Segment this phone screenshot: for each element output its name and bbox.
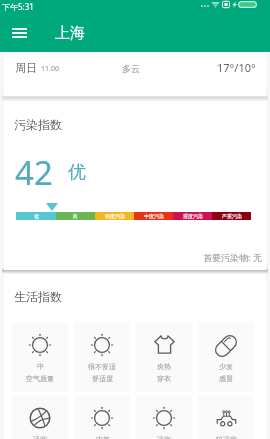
staticText: 舒适度 (92, 374, 113, 383)
staticText: 适宜 (33, 435, 47, 439)
staticText: 中等 (96, 435, 110, 439)
button[interactable]: 周日 (4, 53, 266, 96)
staticText: 17°/10° (217, 60, 256, 75)
button[interactable]: 适宜 (136, 396, 192, 439)
staticText: 生活指数 (14, 289, 62, 304)
staticText: 轻度污染 (105, 213, 125, 219)
button[interactable]: 中等 (74, 396, 130, 439)
button[interactable]: 很不舒适 (74, 323, 130, 392)
staticText: 适宜 (157, 435, 171, 439)
staticText: 严重污染 (222, 213, 242, 219)
staticText: 少发 (219, 362, 233, 371)
staticText: 空气质量 (26, 374, 54, 383)
staticText: 周日 (15, 61, 37, 75)
button[interactable]: 炎热 (136, 323, 192, 392)
button[interactable]: Menu (0, 14, 39, 52)
staticText: 中度污染 (144, 213, 164, 219)
button[interactable]: 少发 (198, 323, 254, 392)
staticText: 较适宜 (216, 435, 237, 439)
button[interactable]: 较适宜 (198, 396, 254, 439)
staticText: 首要污染物: 无 (203, 251, 262, 263)
staticText: 炎热 (157, 362, 171, 371)
button[interactable]: 适宜 (12, 396, 68, 439)
staticText: 穿衣 (157, 374, 171, 383)
staticText: 优 (34, 213, 39, 219)
staticText: 上海 (55, 24, 85, 43)
staticText: 11.00 (41, 64, 59, 74)
staticText: 多云 (122, 63, 140, 74)
staticText: 污染指数 (14, 117, 62, 132)
staticText: 中 (37, 362, 44, 371)
button[interactable]: 中 (12, 323, 68, 392)
staticText: 下午5:31 (2, 1, 34, 12)
staticText: 很不舒适 (88, 362, 116, 371)
staticText: 感冒 (219, 374, 233, 383)
staticText: 重度污染 (183, 213, 203, 219)
staticText: 42 (15, 150, 53, 195)
staticText: 良 (73, 213, 78, 219)
staticText: 优 (68, 161, 86, 184)
